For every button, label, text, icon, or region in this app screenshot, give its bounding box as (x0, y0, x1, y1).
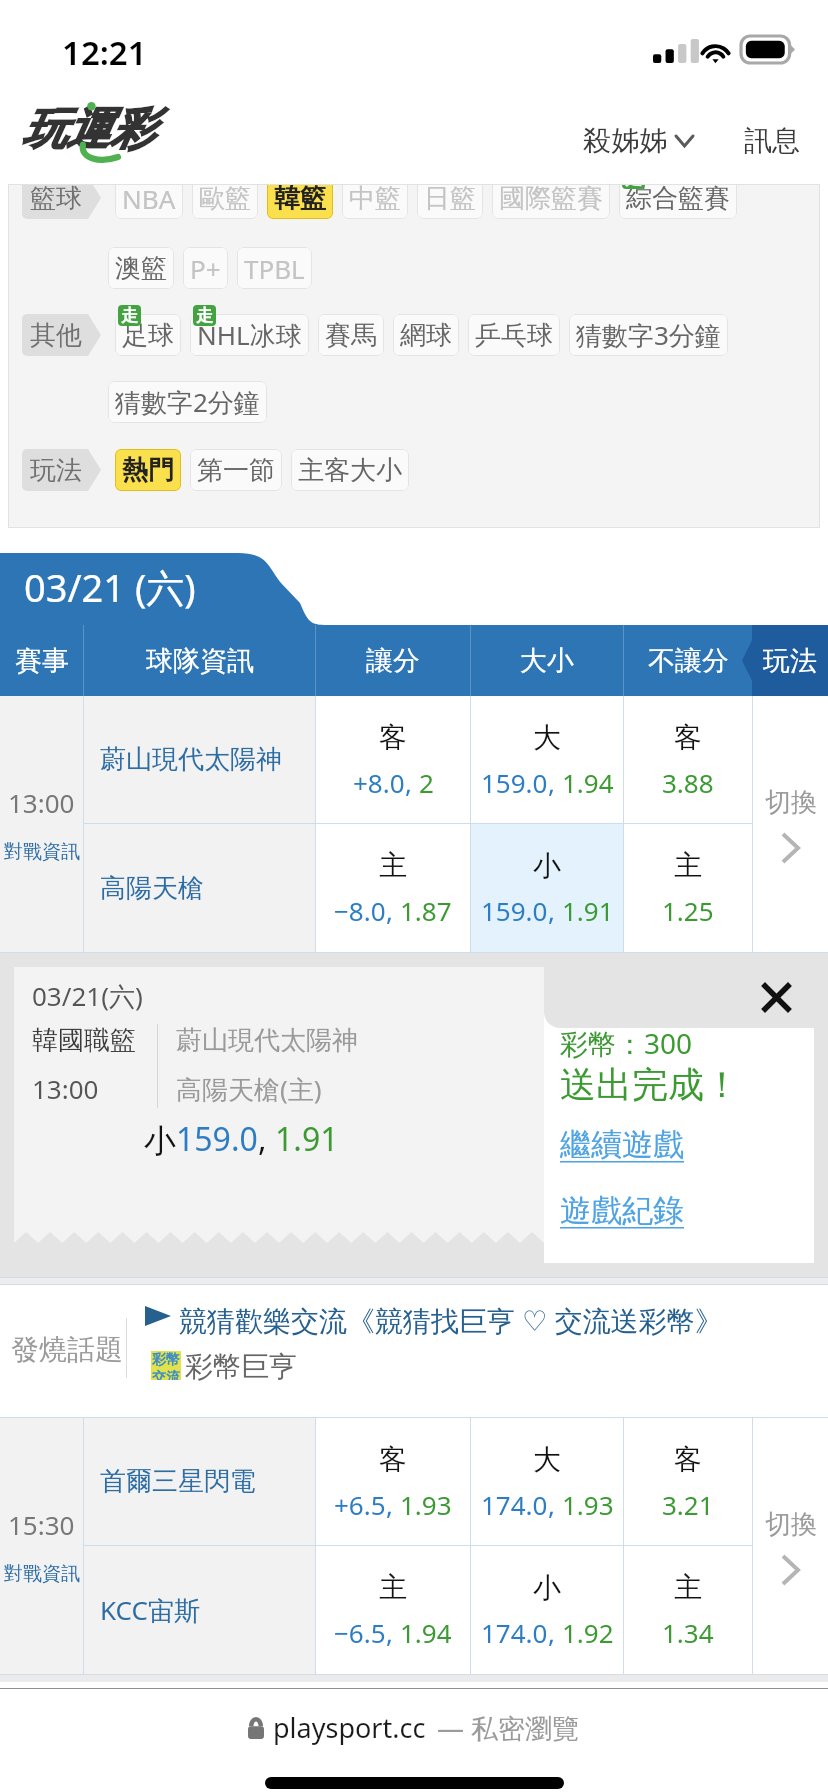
staticText: −8.0 (334, 893, 386, 928)
staticText: 彩幣：300 (560, 1024, 693, 1062)
button[interactable]: 乒乓球 (468, 314, 560, 356)
button[interactable]: 切換 (753, 1418, 828, 1674)
button[interactable]: 玩法 (752, 625, 828, 696)
button[interactable]: 客 (316, 696, 470, 823)
button[interactable]: 玩法 (22, 449, 88, 491)
button[interactable]: 中籃 (342, 184, 408, 219)
button[interactable]: 賽事 (0, 625, 83, 696)
button[interactable]: 主客大小 (291, 449, 409, 491)
button[interactable]: 網球 (393, 314, 459, 356)
button[interactable]: 賽馬 (318, 314, 384, 356)
staticText: 1.91 (275, 1117, 339, 1161)
button[interactable]: 蔚山現代太陽神 (84, 696, 315, 823)
button[interactable]: 球隊資訊 (84, 625, 315, 696)
button[interactable]: 客 (624, 696, 752, 823)
button[interactable]: 大小 (471, 625, 623, 696)
button[interactable]: 韓籃 (267, 184, 333, 219)
staticText: 客 (379, 1442, 407, 1477)
staticText: 高陽天槍(主) (176, 1071, 322, 1107)
button[interactable]: 籃球 (22, 184, 88, 219)
button[interactable]: 首爾三星閃電 (84, 1418, 315, 1545)
staticText: 訊息 (744, 123, 800, 158)
staticText: , (548, 1487, 562, 1522)
button[interactable]: 繼續遊戲 (560, 1125, 684, 1164)
button[interactable]: 日籃 (417, 184, 483, 219)
staticText: 彩幣巨亨 (185, 1349, 297, 1384)
button[interactable]: 第一節 (190, 449, 282, 491)
staticText: , (386, 893, 400, 928)
button[interactable]: 主 (624, 1546, 752, 1674)
button[interactable]: 主 (316, 824, 470, 952)
staticText: 對戰資訊 (4, 1562, 80, 1586)
button[interactable]: 猜數字3分鐘 (569, 314, 728, 356)
staticText: 1.94 (562, 765, 614, 800)
button[interactable]: 澳籃 (108, 247, 174, 289)
button[interactable]: 15:30 (0, 1418, 83, 1674)
button[interactable]: 不讓分 (624, 625, 752, 696)
button[interactable]: 讓分 (316, 625, 470, 696)
staticText: 高陽天槍 (100, 872, 204, 905)
button[interactable]: 遊戲紀錄 (560, 1191, 684, 1230)
button[interactable]: 訊息 (738, 115, 806, 166)
staticText: 競猜歡樂交流《競猜找巨亨 ♡ 交流送彩幣》 (179, 1301, 723, 1339)
button[interactable]: NBA (115, 184, 183, 219)
button[interactable]: 其他 (22, 314, 88, 356)
staticText: +8.0 (353, 765, 405, 800)
staticText: +6.5 (334, 1487, 386, 1522)
staticText: 大 (533, 720, 561, 755)
staticText: 1.93 (562, 1487, 614, 1522)
staticText: 174.0 (481, 1615, 548, 1650)
staticText: 不讓分 (648, 644, 729, 678)
button[interactable]: 客 (316, 1418, 470, 1545)
staticText: 交流 (152, 1369, 180, 1380)
button[interactable]: 客 (624, 1418, 752, 1545)
staticText: 切換 (765, 1508, 817, 1541)
button[interactable]: 高陽天槍 (84, 824, 315, 952)
button[interactable]: 國際籃賽 (492, 184, 610, 219)
staticText: 客 (379, 720, 407, 755)
staticText: 1.92 (562, 1615, 614, 1650)
staticText: 174.0 (481, 1487, 548, 1522)
staticText: 13:00 (8, 785, 75, 820)
button[interactable]: playsport.cc (248, 1709, 580, 1746)
staticText: 12:21 (62, 30, 147, 75)
button[interactable]: KCC宙斯 (84, 1546, 315, 1674)
button[interactable]: 熱門 (115, 449, 181, 491)
button[interactable]: 發燒話題 (0, 1285, 828, 1417)
button[interactable]: 小 (471, 1546, 623, 1674)
staticText: 主 (674, 848, 702, 883)
button[interactable]: 玩運彩 (22, 100, 178, 162)
button[interactable]: 足球 (115, 314, 181, 356)
button[interactable]: 13:00 (0, 696, 83, 952)
button[interactable]: Close (544, 967, 814, 1028)
staticText: 籃球 (30, 184, 82, 215)
button[interactable]: NHL冰球 (190, 314, 309, 356)
staticText: 其他 (30, 319, 82, 352)
staticText: 送出完成！ (560, 1062, 740, 1107)
staticText: 主客大小 (298, 454, 402, 487)
button[interactable]: 大 (471, 696, 623, 823)
staticText: 走 (196, 305, 213, 326)
staticText: 3.88 (662, 765, 714, 800)
button[interactable]: TPBL (237, 247, 312, 289)
staticText: 玩法 (30, 454, 82, 487)
staticText: 走 (625, 184, 642, 189)
button[interactable]: 歐籃 (192, 184, 258, 219)
button[interactable]: 殺姊姊 (577, 115, 699, 166)
staticText: 蔚山現代太陽神 (100, 743, 282, 776)
staticText: , (386, 1615, 400, 1650)
staticText: , (258, 1117, 275, 1161)
staticText: 發燒話題 (11, 1332, 123, 1367)
button[interactable]: 切換 (753, 696, 828, 952)
staticText: 日籃 (424, 184, 476, 215)
button[interactable]: P+ (183, 247, 228, 289)
staticText: 2 (419, 765, 434, 800)
button[interactable]: 猜數字2分鐘 (108, 381, 267, 423)
button[interactable]: 大 (471, 1418, 623, 1545)
button[interactable]: 綜合籃賽 (619, 184, 737, 219)
staticText: 繼續遊戲 (560, 1125, 684, 1164)
button[interactable]: 主 (624, 824, 752, 952)
staticText: 159.0 (176, 1117, 258, 1161)
button[interactable]: 主 (316, 1546, 470, 1674)
button[interactable]: 小 (471, 824, 623, 952)
